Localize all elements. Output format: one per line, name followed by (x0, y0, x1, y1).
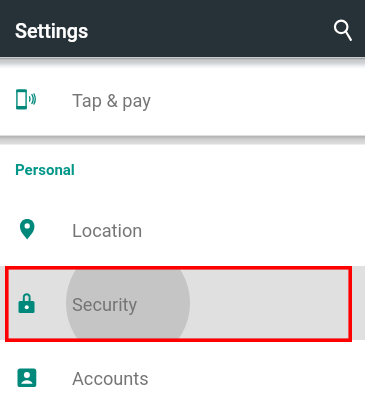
button[interactable]: Search (321, 7, 365, 51)
staticText: Tap & pay (72, 90, 151, 111)
button[interactable]: Security (0, 266, 365, 340)
button[interactable]: Tap & pay (0, 62, 365, 136)
staticText: Personal (15, 161, 75, 179)
staticText: Settings (15, 20, 89, 43)
button[interactable]: Location (0, 192, 365, 266)
staticText: Location (72, 220, 143, 241)
staticText: Accounts (72, 368, 149, 389)
button[interactable]: Accounts (0, 340, 365, 414)
staticText: Security (72, 294, 138, 315)
